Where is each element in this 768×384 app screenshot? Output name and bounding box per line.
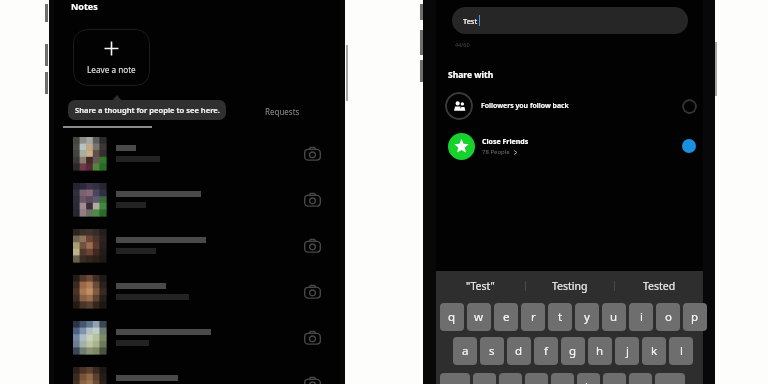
- button[interactable]: Close Friends: [436, 130, 703, 162]
- button[interactable]: a: [453, 337, 477, 365]
- button[interactable]: z: [473, 373, 496, 384]
- button[interactable]: Followers you follow back: [436, 90, 703, 122]
- button[interactable]: Send message with camera: [301, 327, 323, 349]
- button[interactable]: n: [603, 373, 626, 384]
- staticText: Testing: [552, 279, 588, 293]
- button[interactable]: t: [548, 303, 572, 331]
- button[interactable]: Share a thought for people to see here.: [68, 100, 226, 120]
- button[interactable]: k: [642, 337, 666, 365]
- staticText: 44/60: [455, 41, 470, 48]
- button[interactable]: w: [467, 303, 491, 331]
- button[interactable]: f: [534, 337, 558, 365]
- staticText: Close Friends: [482, 137, 529, 147]
- staticText: u: [610, 309, 618, 325]
- staticText: y: [584, 309, 590, 325]
- staticText: b: [585, 379, 593, 384]
- button[interactable]: Send message with camera: [54, 367, 340, 384]
- button[interactable]: e: [494, 303, 518, 331]
- button[interactable]: r: [521, 303, 545, 331]
- button[interactable]: Send message with camera: [54, 137, 340, 170]
- staticText: o: [665, 309, 672, 325]
- button[interactable]: s: [480, 337, 504, 365]
- button[interactable]: Send message with camera: [301, 235, 323, 257]
- button[interactable]: b: [577, 373, 600, 384]
- staticText: r: [531, 309, 536, 325]
- staticText: Tested: [643, 279, 676, 293]
- staticText: w: [474, 309, 484, 325]
- staticText: Leave a note: [87, 64, 136, 75]
- button[interactable]: p: [683, 303, 707, 331]
- button[interactable]: c: [525, 373, 548, 384]
- button[interactable]: j: [615, 337, 639, 365]
- button[interactable]: Send message with camera: [54, 183, 340, 216]
- button[interactable]: Send message with camera: [301, 143, 323, 165]
- staticText: "Test": [466, 279, 495, 293]
- button[interactable]: Leave a note: [73, 29, 150, 86]
- button[interactable]: x: [499, 373, 522, 384]
- button[interactable]: i: [629, 303, 653, 331]
- button[interactable]: h: [588, 337, 612, 365]
- button[interactable]: "Test": [436, 279, 525, 293]
- staticText: e: [503, 309, 510, 325]
- button[interactable]: Tested: [615, 279, 703, 293]
- staticText: Notes: [71, 0, 98, 12]
- button[interactable]: Requests: [260, 103, 304, 119]
- staticText: Share with: [448, 69, 494, 81]
- staticText: Requests: [265, 106, 300, 117]
- button[interactable]: q: [440, 303, 464, 331]
- staticText: a: [462, 343, 469, 359]
- staticText: Share a thought for people to see here.: [75, 105, 220, 115]
- button[interactable]: Testing: [526, 279, 614, 293]
- button[interactable]: Test: [452, 7, 688, 34]
- button[interactable]: Send message with camera: [54, 321, 340, 354]
- button[interactable]: o: [656, 303, 680, 331]
- staticText: f: [544, 343, 548, 359]
- button[interactable]: y: [575, 303, 599, 331]
- button[interactable]: d: [507, 337, 531, 365]
- button[interactable]: Send message with camera: [54, 229, 340, 262]
- staticText: 78 People: [482, 148, 510, 156]
- staticText: d: [515, 343, 523, 359]
- button[interactable]: Send message with camera: [301, 281, 323, 303]
- staticText: p: [691, 309, 699, 325]
- button[interactable]: Send message with camera: [54, 275, 340, 308]
- staticText: l: [680, 343, 683, 359]
- button[interactable]: m: [629, 373, 652, 384]
- button[interactable]: v: [551, 373, 574, 384]
- staticText: Test: [463, 16, 478, 26]
- staticText: Followers you follow back: [481, 101, 569, 111]
- staticText: k: [651, 343, 658, 359]
- button[interactable]: Backspace: [655, 373, 685, 384]
- staticText: i: [640, 309, 643, 325]
- button[interactable]: l: [669, 337, 693, 365]
- staticText: s: [489, 343, 495, 359]
- staticText: t: [558, 309, 563, 325]
- button[interactable]: Send message with camera: [301, 373, 323, 384]
- staticText: h: [596, 343, 604, 359]
- button[interactable]: u: [602, 303, 626, 331]
- button[interactable]: Send message with camera: [301, 189, 323, 211]
- staticText: g: [569, 343, 577, 359]
- staticText: q: [448, 309, 456, 325]
- staticText: j: [626, 343, 629, 359]
- button[interactable]: Shift: [440, 373, 470, 384]
- button[interactable]: g: [561, 337, 585, 365]
